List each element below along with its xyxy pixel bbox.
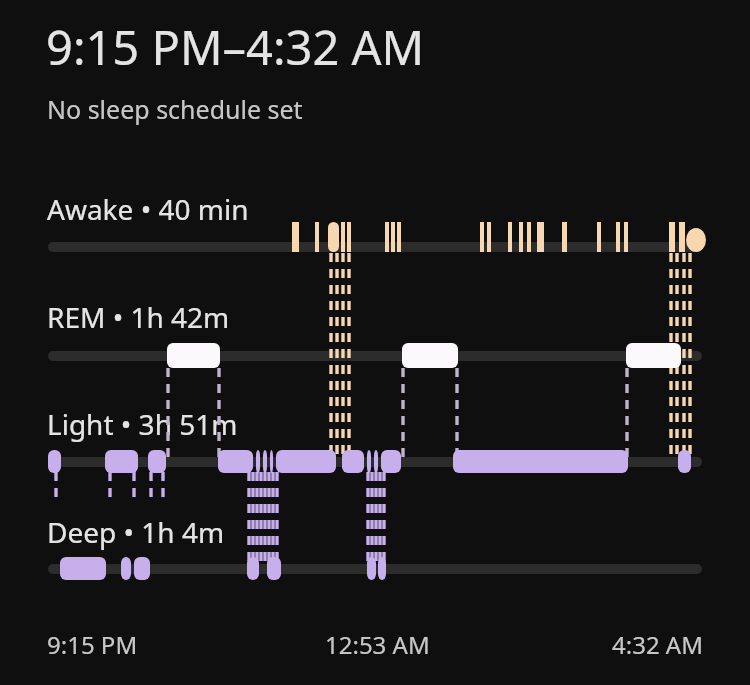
- button[interactable]: [0, 0, 750, 685]
